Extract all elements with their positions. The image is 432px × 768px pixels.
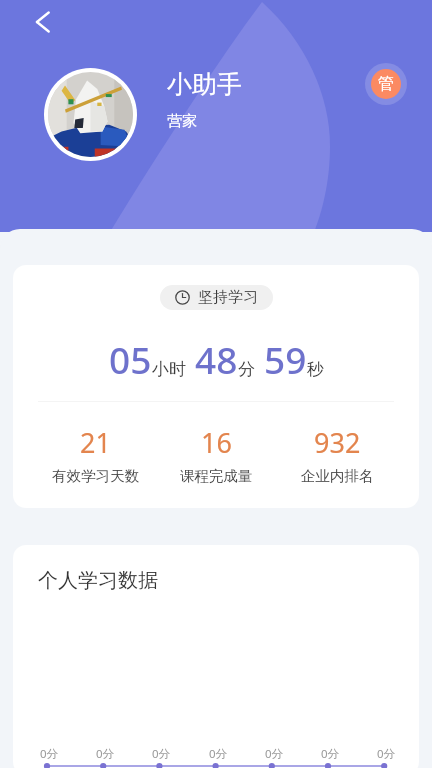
staticText: 0分 [152,746,171,762]
staticText: 0分 [40,746,59,762]
staticText: 企业内排名 [301,467,374,485]
staticText: 营家 [167,112,197,131]
staticText: 课程完成量 [180,467,253,485]
staticText: 坚持学习 [198,288,258,307]
staticText: 16 [201,424,232,461]
button[interactable]: 16 [156,424,277,485]
button[interactable]: 21 [35,424,156,485]
staticText: 小助手 [167,69,242,100]
staticText: 0分 [265,746,284,762]
button[interactable]: 坚持学习 [160,285,273,310]
staticText: 分 [238,359,255,380]
staticText: 932 [314,424,361,461]
staticText: 0分 [209,746,228,762]
staticText: 个人学习数据 [38,568,158,593]
staticText: 21 [80,424,111,461]
staticText: 05 [109,334,152,384]
staticText: 0分 [377,746,396,762]
staticText: 48 [195,334,238,384]
staticText: 秒 [307,359,324,380]
staticText: 0分 [321,746,340,762]
staticText: 59 [264,334,307,384]
button[interactable]: Back [22,2,62,42]
button[interactable]: 932 [277,424,398,485]
staticText: 0分 [96,746,115,762]
button[interactable]: Avatar [44,68,137,161]
staticText: 小时 [152,359,186,380]
staticText: 有效学习天数 [52,467,139,485]
button[interactable]: 管理 [365,63,407,105]
staticText: 管 [378,74,394,94]
